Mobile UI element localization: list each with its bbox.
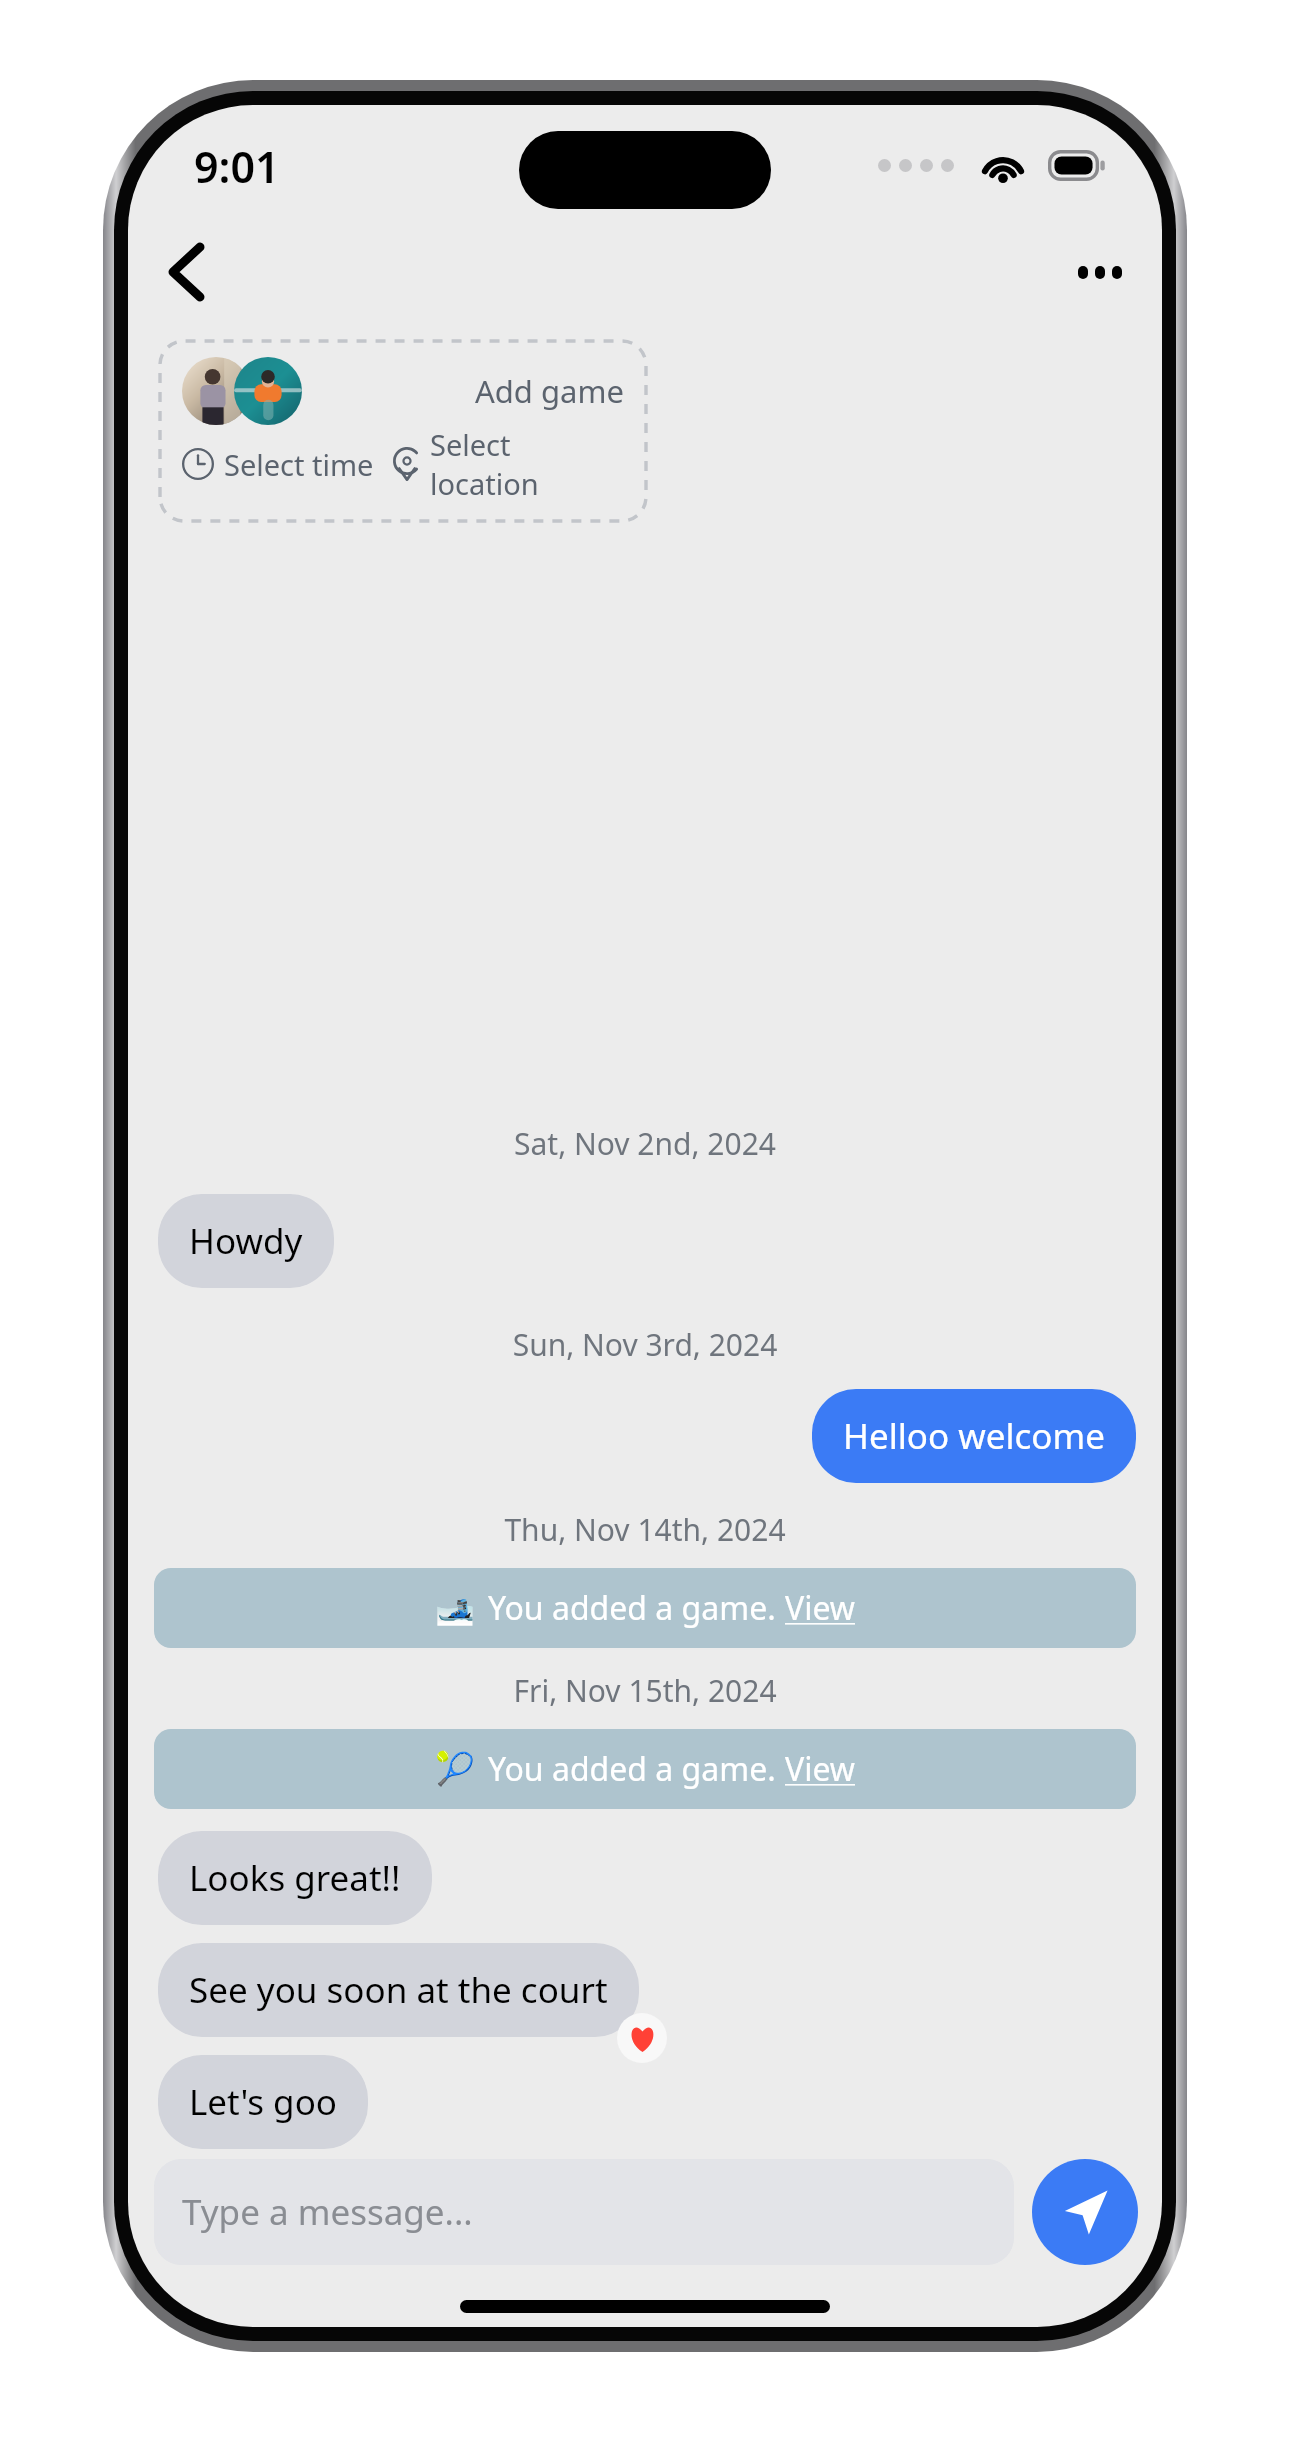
staticText: You added a game. <box>488 1586 785 1630</box>
button[interactable]: 🎿 <box>154 1568 1136 1648</box>
button[interactable]: Helloo welcome <box>812 1389 1136 1483</box>
staticText: Fri, Nov 15th, 2024 <box>128 1670 1162 1711</box>
staticText: 🎿 <box>435 1589 475 1627</box>
staticText: Select time <box>224 445 374 484</box>
staticText: 🎾 <box>435 1750 475 1788</box>
staticText: Thu, Nov 14th, 2024 <box>128 1509 1162 1550</box>
staticText: Helloo welcome <box>843 1412 1105 1460</box>
button[interactable]: Add game <box>160 341 646 521</box>
staticText: View <box>785 1747 856 1791</box>
staticText: You added a game. <box>488 1747 785 1791</box>
button[interactable]: Send <box>1032 2159 1138 2265</box>
staticText: Looks great!! <box>189 1854 401 1902</box>
staticText: Type a message... <box>182 2188 473 2236</box>
button[interactable]: 🎾 <box>154 1729 1136 1809</box>
staticText: See you soon at the court <box>189 1966 608 2014</box>
staticText: 9:01 <box>194 137 280 196</box>
button[interactable]: Let's goo <box>158 2055 368 2149</box>
staticText: View <box>785 1586 856 1630</box>
staticText: Howdy <box>189 1217 303 1265</box>
button[interactable]: More options <box>1054 226 1146 318</box>
button[interactable]: Howdy <box>158 1194 334 1288</box>
staticText: Sun, Nov 3rd, 2024 <box>128 1324 1162 1365</box>
button[interactable]: Back <box>140 226 232 318</box>
staticText: Sat, Nov 2nd, 2024 <box>128 1123 1162 1164</box>
button[interactable]: Looks great!! <box>158 1831 432 1925</box>
staticText: Select location <box>430 425 624 503</box>
button[interactable]: See you soon at the court <box>158 1943 639 2037</box>
staticText: Add game <box>475 370 624 412</box>
button[interactable]: Type a message... <box>154 2159 1014 2265</box>
staticText: Let's goo <box>189 2078 337 2126</box>
